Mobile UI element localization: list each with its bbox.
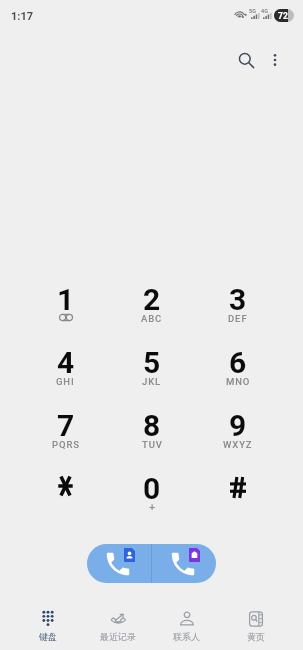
staticText: 2 bbox=[143, 282, 161, 317]
button[interactable]: 0 bbox=[109, 466, 195, 529]
button[interactable]: 3 bbox=[195, 277, 281, 340]
button[interactable] bbox=[195, 466, 281, 529]
staticText: 9 bbox=[229, 408, 247, 443]
staticText: DEF bbox=[228, 313, 248, 324]
staticText: 6 bbox=[229, 345, 247, 380]
button[interactable]: 4 bbox=[22, 340, 109, 403]
button[interactable]: 最近记录 bbox=[83, 600, 152, 650]
button[interactable]: 联系人 bbox=[152, 600, 221, 650]
staticText: 最近记录 bbox=[100, 631, 136, 642]
button[interactable]: 9 bbox=[195, 403, 281, 466]
staticText: WXYZ bbox=[223, 439, 253, 450]
button[interactable]: Call with SIM 2 bbox=[152, 544, 216, 583]
staticText: 7 bbox=[57, 408, 75, 443]
button[interactable]: 6 bbox=[195, 340, 281, 403]
staticText: PQRS bbox=[52, 439, 80, 450]
staticText: ABC bbox=[141, 313, 163, 324]
staticText: 0 bbox=[143, 471, 161, 506]
button[interactable]: 键盘 bbox=[13, 600, 83, 650]
button[interactable]: Call with SIM 1 bbox=[87, 544, 151, 583]
staticText: 键盘 bbox=[39, 631, 57, 642]
button[interactable]: 7 bbox=[22, 403, 109, 466]
staticText: 1 bbox=[57, 282, 75, 317]
staticText: 72 bbox=[278, 11, 288, 21]
button[interactable]: 8 bbox=[109, 403, 195, 466]
staticText: 5G bbox=[249, 8, 256, 14]
button[interactable]: 5 bbox=[109, 340, 195, 403]
staticText: 4G bbox=[261, 8, 268, 14]
staticText: 4 bbox=[57, 345, 75, 380]
button[interactable]: Search bbox=[230, 44, 262, 76]
button[interactable]: 2 bbox=[109, 277, 195, 340]
staticText: + bbox=[149, 501, 156, 514]
staticText: 1:17 bbox=[11, 10, 34, 23]
staticText: 3 bbox=[229, 282, 247, 317]
staticText: 5 bbox=[143, 345, 161, 380]
button[interactable]: 黄页 bbox=[221, 600, 290, 650]
button[interactable]: More options bbox=[259, 44, 291, 76]
staticText: 联系人 bbox=[173, 631, 200, 642]
button[interactable]: 1 bbox=[22, 277, 109, 340]
staticText: MNO bbox=[226, 376, 251, 387]
staticText: 黄页 bbox=[247, 631, 265, 642]
button[interactable] bbox=[22, 466, 109, 529]
staticText: 8 bbox=[143, 408, 161, 443]
staticText: TUV bbox=[142, 439, 163, 450]
staticText: JKL bbox=[142, 376, 162, 387]
staticText: GHI bbox=[56, 376, 75, 387]
